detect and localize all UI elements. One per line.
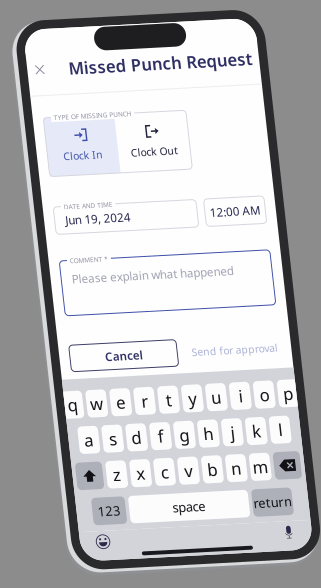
button[interactable]: Cancel: [22, 331, 134, 358]
staticText: Missed Punch Request: [54, 38, 246, 61]
staticText: Jun 19, 2024: [33, 196, 101, 212]
staticText: i: [192, 380, 196, 403]
staticText: m: [199, 453, 215, 476]
staticText: g: [126, 416, 137, 439]
staticText: u: [164, 380, 175, 403]
button[interactable]: w: [34, 377, 55, 405]
staticText: t: [116, 380, 122, 403]
button[interactable]: c: [96, 450, 118, 478]
staticText: p: [239, 380, 250, 403]
button[interactable]: Clock In: [22, 99, 96, 159]
button[interactable]: space: [66, 487, 191, 515]
staticText: c: [103, 453, 111, 476]
staticText: d: [76, 416, 87, 439]
staticText: y: [140, 380, 149, 403]
staticText: Please explain what happened: [33, 256, 202, 272]
button[interactable]: i: [184, 377, 205, 405]
staticText: s: [53, 416, 61, 439]
staticText: j: [180, 416, 184, 439]
button[interactable]: u: [159, 377, 180, 405]
button[interactable]: b: [146, 450, 168, 478]
staticText: l: [230, 416, 234, 439]
staticText: DATE AND TIME: [33, 186, 84, 195]
staticText: h: [151, 416, 162, 439]
staticText: Cancel: [58, 336, 97, 352]
button[interactable]: t: [109, 377, 130, 405]
staticText: b: [151, 453, 162, 476]
staticText: space: [111, 492, 146, 510]
staticText: w: [37, 380, 51, 403]
staticText: COMMENT *: [33, 241, 73, 250]
staticText: Send for approval: [149, 337, 239, 352]
button[interactable]: Delete: [221, 450, 249, 478]
button[interactable]: d: [71, 414, 93, 442]
staticText: f: [104, 416, 110, 439]
button[interactable]: g: [121, 414, 143, 442]
staticText: e: [64, 380, 74, 403]
button[interactable]: v: [121, 450, 143, 478]
button[interactable]: r: [84, 377, 105, 405]
button[interactable]: 123: [27, 487, 62, 515]
staticText: 12:00 AM: [184, 196, 237, 212]
staticText: o: [214, 380, 224, 403]
button[interactable]: x: [71, 450, 93, 478]
button[interactable]: j: [171, 414, 193, 442]
button[interactable]: k: [196, 414, 218, 442]
button[interactable]: Clock Out: [96, 99, 171, 159]
button[interactable]: y: [134, 377, 155, 405]
staticText: v: [127, 453, 136, 476]
staticText: k: [202, 416, 211, 439]
button[interactable]: n: [171, 450, 193, 478]
button[interactable]: f: [96, 414, 118, 442]
staticText: return: [196, 492, 236, 510]
staticText: r: [91, 380, 98, 403]
button[interactable]: s: [46, 414, 68, 442]
button[interactable]: o: [209, 377, 230, 405]
button[interactable]: z: [46, 450, 68, 478]
button[interactable]: m: [196, 450, 218, 478]
staticText: z: [53, 453, 61, 476]
button[interactable]: h: [146, 414, 168, 442]
button[interactable]: l: [221, 414, 243, 442]
staticText: n: [176, 453, 187, 476]
button[interactable]: p: [234, 377, 255, 405]
button[interactable]: Send for approval: [146, 331, 242, 358]
staticText: Clock Out: [109, 132, 158, 146]
staticText: x: [77, 453, 86, 476]
button[interactable]: e: [59, 377, 80, 405]
button[interactable]: return: [195, 487, 237, 515]
staticText: Clock In: [38, 132, 79, 146]
button[interactable]: Close: [11, 33, 37, 67]
